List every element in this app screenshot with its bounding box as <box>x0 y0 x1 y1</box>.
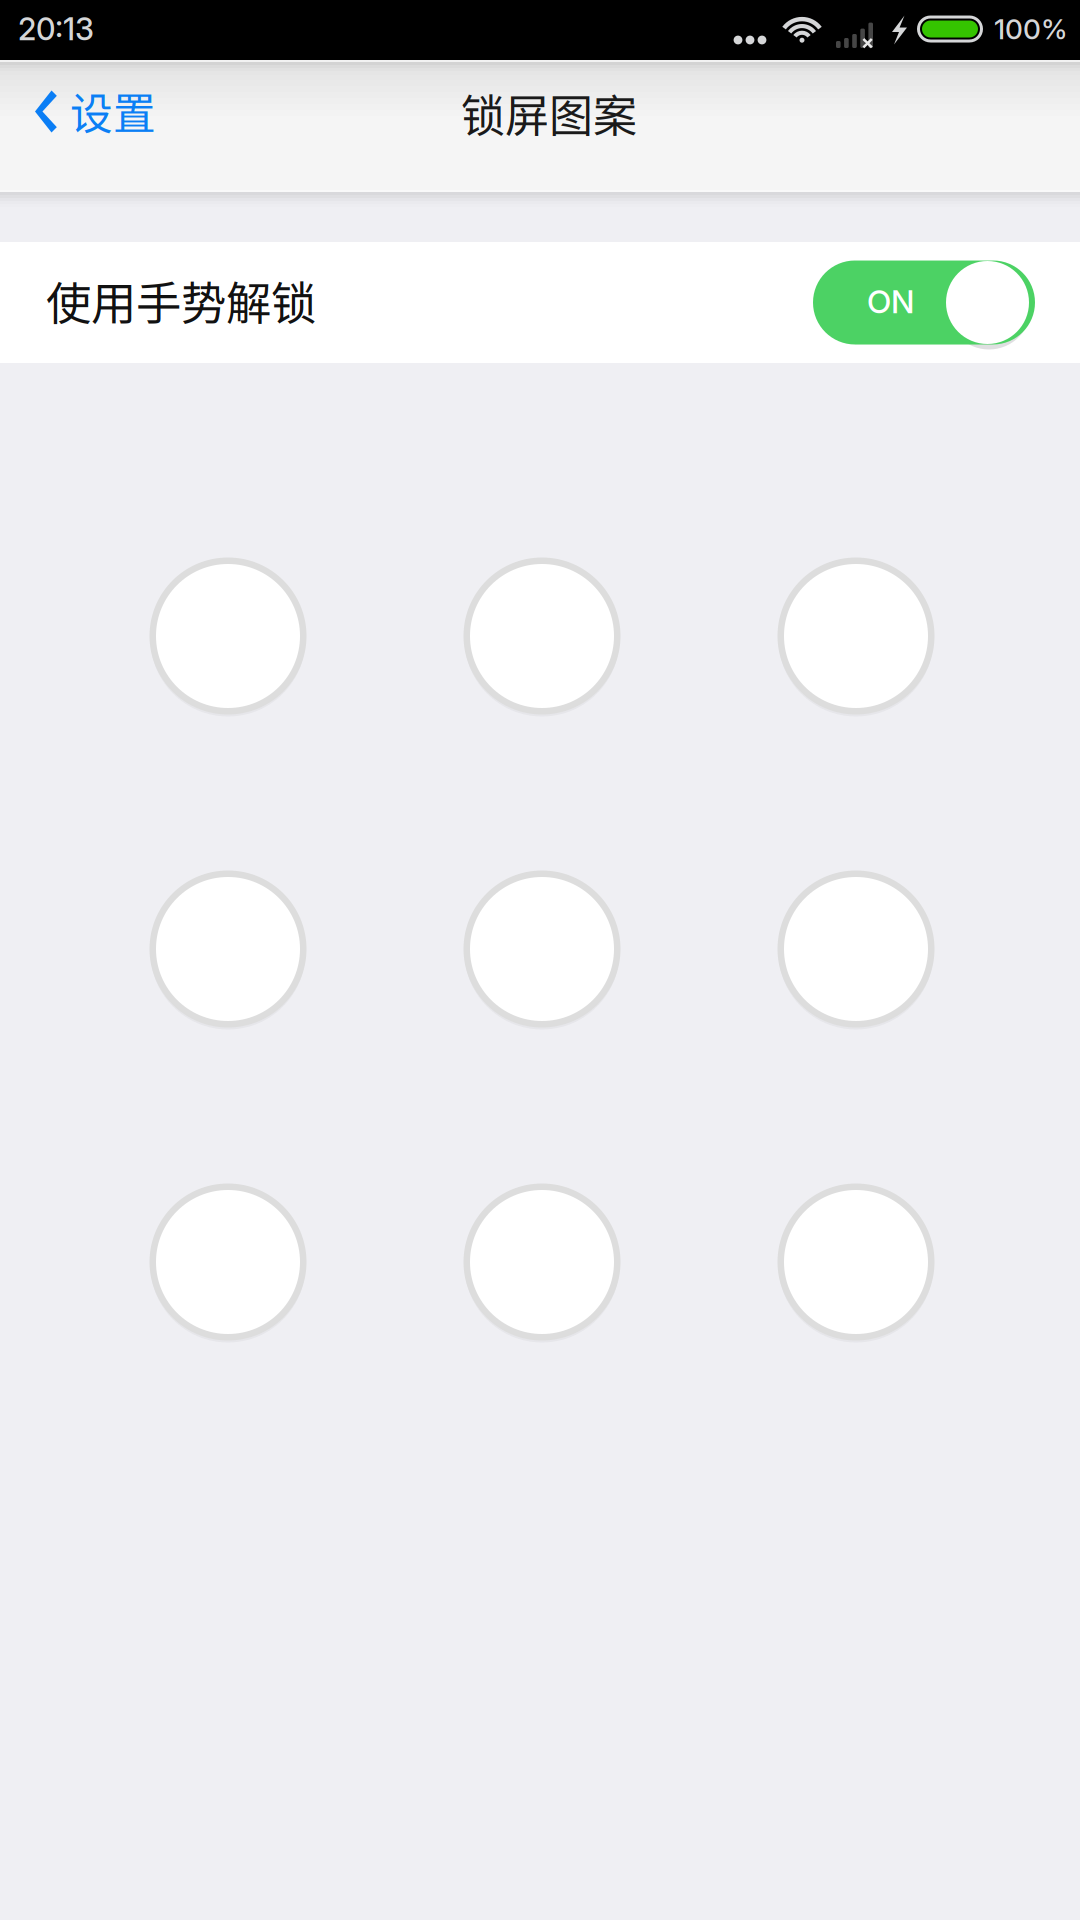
button[interactable]: Pattern dot 8 <box>463 1182 620 1342</box>
staticText: 使用手势解锁 <box>46 268 316 333</box>
button[interactable]: Pattern dot 4 <box>149 869 306 1029</box>
staticText: ON <box>867 282 914 321</box>
staticText: 设置 <box>70 80 156 142</box>
button[interactable]: Pattern dot 2 <box>463 556 620 716</box>
button[interactable]: Pattern dot 7 <box>149 1182 306 1342</box>
button[interactable]: Pattern dot 3 <box>777 556 934 716</box>
staticText: 100% <box>994 12 1068 46</box>
button[interactable]: Pattern dot 1 <box>149 556 306 716</box>
button[interactable]: Pattern dot 9 <box>777 1182 934 1342</box>
button[interactable]: Pattern dot 5 <box>463 869 620 1029</box>
staticText: 锁屏图案 <box>461 81 637 145</box>
button[interactable]: 设置 <box>0 60 184 192</box>
button[interactable]: Pattern dot 6 <box>777 869 934 1029</box>
staticText: 20:13 <box>18 10 94 47</box>
button[interactable]: 使用手势解锁, 开 <box>813 260 1035 344</box>
